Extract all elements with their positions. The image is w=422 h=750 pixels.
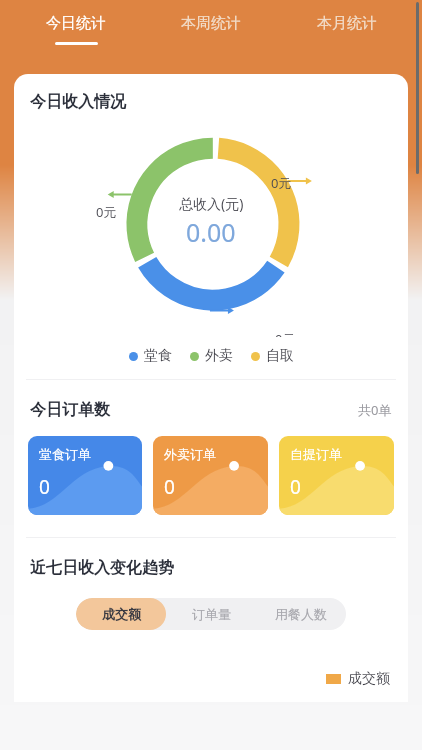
button[interactable]: 今日统计 — [16, 0, 136, 45]
staticText: 今日统计 — [46, 14, 106, 33]
button[interactable]: 成交额 — [76, 598, 166, 630]
button[interactable]: 订单量 — [166, 598, 256, 630]
staticText: 0元 — [275, 330, 296, 337]
button[interactable]: 外卖 — [190, 347, 233, 365]
staticText: 0.00 — [186, 215, 236, 249]
button[interactable]: 堂食 — [129, 347, 172, 365]
staticText: 0元 — [96, 203, 117, 221]
staticText: 自取 — [266, 347, 294, 365]
staticText: 外卖 — [205, 347, 233, 365]
staticText: 自提订单 — [290, 446, 342, 462]
staticText: 成交额 — [102, 606, 141, 622]
staticText: 近七日收入变化趋势 — [30, 558, 174, 578]
staticText: 堂食 — [144, 347, 172, 365]
staticText: 0元 — [271, 174, 292, 192]
button[interactable]: 自取 — [251, 347, 294, 365]
staticText: 0 — [290, 474, 301, 500]
staticText: 共0单 — [358, 401, 392, 419]
staticText: 总收入(元) — [179, 194, 244, 213]
button[interactable]: 外卖订单 — [153, 436, 268, 515]
button[interactable]: 本月统计 — [287, 0, 407, 42]
button[interactable]: 用餐人数 — [256, 598, 346, 630]
staticText: 今日订单数 — [30, 400, 110, 420]
staticText: 今日收入情况 — [30, 92, 126, 112]
staticText: 成交额 — [348, 670, 390, 688]
staticText: 本周统计 — [181, 14, 241, 33]
staticText: 本月统计 — [317, 14, 377, 33]
staticText: 0 — [39, 474, 50, 500]
button[interactable]: 自提订单 — [279, 436, 394, 515]
staticText: 外卖订单 — [164, 446, 216, 462]
staticText: 用餐人数 — [275, 606, 327, 622]
staticText: 订单量 — [192, 606, 231, 622]
staticText: 0 — [164, 474, 175, 500]
button[interactable]: 本周统计 — [151, 0, 271, 42]
button[interactable]: 堂食订单 — [28, 436, 142, 515]
staticText: 堂食订单 — [39, 446, 91, 462]
